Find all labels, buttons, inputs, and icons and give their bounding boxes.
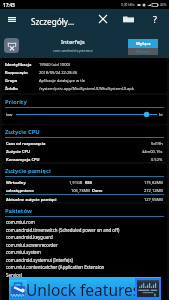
staticText: Źródło bbox=[5, 86, 18, 91]
staticText: Dane bbox=[92, 188, 103, 193]
staticText: com.miui.contentcatcher (Application Ext… bbox=[6, 264, 105, 270]
staticText: Pakietów bbox=[5, 207, 32, 215]
staticText: com.miui.screenrecorder bbox=[6, 242, 58, 248]
staticText: Service) bbox=[6, 272, 22, 278]
staticText: Unlock features bbox=[26, 279, 141, 300]
staticText: hi bbox=[159, 112, 163, 117]
button[interactable]: Wymuś bbox=[128, 48, 158, 55]
staticText: com.android.systemui bbox=[53, 48, 93, 53]
staticText: /system/priv-app/MiuiSystemUI/MiuiSystem… bbox=[39, 86, 134, 91]
staticText: 0,00 kB/s bbox=[121, 3, 135, 7]
staticText: 17:45 bbox=[3, 2, 15, 8]
staticText: low bbox=[6, 112, 13, 117]
staticText: com.android.timerswitch (Scheduled power… bbox=[6, 227, 120, 233]
button[interactable]: Wyłącz bbox=[128, 39, 158, 48]
staticText: 175,82MB bbox=[144, 180, 163, 185]
staticText: Zużycie CPU bbox=[6, 149, 30, 154]
staticText: com.miui.rom bbox=[6, 219, 35, 225]
staticText: 5d19h bbox=[151, 141, 163, 146]
staticText: Rozpoczęto bbox=[5, 70, 28, 75]
button[interactable]: Help bbox=[147, 11, 163, 27]
staticText: Konsumpcja CPU bbox=[6, 157, 40, 162]
staticText: udostępniono bbox=[6, 188, 34, 193]
staticText: Priority bbox=[5, 98, 27, 106]
staticText: 1,91GB bbox=[69, 180, 83, 185]
staticText: Szczegóły… bbox=[31, 16, 75, 27]
staticText: 2018/05/24 22:28:36 bbox=[39, 70, 78, 75]
button[interactable]: Close bbox=[95, 11, 111, 27]
button[interactable]: Unlock features bbox=[9, 277, 161, 300]
staticText: Wymuś bbox=[136, 49, 150, 54]
staticText: RSS bbox=[85, 180, 93, 185]
staticText: Identyfikacja bbox=[5, 62, 32, 67]
staticText: Grupa bbox=[5, 78, 18, 83]
staticText: Czas od rozpoczęcia bbox=[6, 141, 46, 146]
staticText: Wyłącz bbox=[136, 41, 151, 47]
button[interactable]: Menu bbox=[4, 11, 20, 27]
staticText: 44% bbox=[160, 3, 167, 7]
staticText: Interfejs bbox=[61, 38, 85, 46]
staticText: 19940 (uid 1000) bbox=[39, 62, 71, 67]
staticText: ? bbox=[153, 13, 157, 25]
staticText: com.miui.system bbox=[6, 249, 41, 255]
staticText: Wirtualny bbox=[6, 180, 26, 185]
staticText: com.android.keyguard bbox=[6, 234, 53, 240]
staticText: 272,12MB bbox=[144, 188, 163, 193]
staticText: 44m00.15s bbox=[142, 149, 163, 154]
staticText: 127,55MB bbox=[144, 197, 163, 202]
staticText: Zużycie CPU bbox=[5, 128, 40, 136]
staticText: 106,73MB bbox=[71, 188, 90, 193]
staticText: Aktualne zużycie pamięci bbox=[6, 197, 57, 202]
button[interactable]: Open folder bbox=[120, 11, 136, 27]
staticText: 0.52% bbox=[151, 157, 163, 162]
staticText: Zużycie pamięci bbox=[5, 167, 51, 175]
staticText: Aplikacje działające w tle bbox=[39, 78, 86, 83]
staticText: com.android.systemui (Interfejs) bbox=[6, 257, 73, 263]
